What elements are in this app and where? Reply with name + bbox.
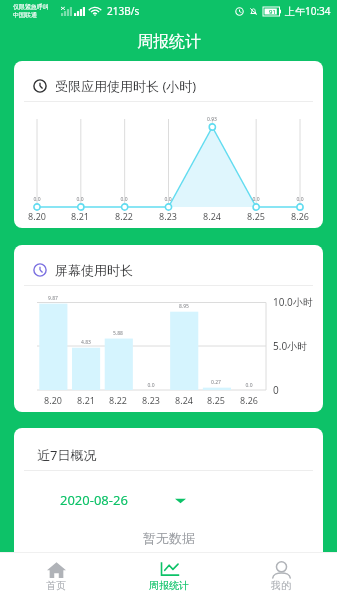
staticText: 仅限紧急呼叫 (13, 3, 49, 11)
staticText: 中国联通 (13, 11, 37, 19)
staticText: 8.21 (77, 394, 95, 406)
button[interactable]: 周报统计 (113, 553, 225, 600)
staticText: 近7日概况 (37, 446, 97, 464)
staticText: 我的 (271, 579, 291, 592)
staticText: 8.24 (203, 210, 221, 222)
button[interactable]: 2020-08-26 (60, 486, 186, 514)
button[interactable]: 首页 (0, 553, 112, 600)
staticText: 8.20 (28, 210, 46, 222)
staticText: 9.87 (48, 295, 58, 302)
button[interactable]: 我的 (225, 553, 337, 600)
staticText: 8.95 (179, 303, 189, 310)
staticText: 5.0小时 (273, 339, 308, 353)
staticText: 0.0 (120, 196, 128, 203)
staticText: 8.22 (109, 394, 127, 406)
staticText: 首页 (46, 579, 66, 592)
staticText: 0.0 (296, 196, 304, 203)
staticText: 0.0 (245, 382, 253, 389)
staticText: 213B/s (107, 4, 140, 18)
staticText: 暂无数据 (143, 530, 195, 546)
staticText: 受限应用使用时长 (小时) (55, 77, 197, 95)
staticText: 8.24 (175, 394, 193, 406)
staticText: 5.88 (113, 330, 123, 337)
staticText: 91 (269, 8, 276, 16)
staticText: 8.23 (159, 210, 177, 222)
staticText: 4.83 (81, 339, 91, 346)
staticText: 8.26 (291, 210, 309, 222)
staticText: 周报统计 (137, 32, 201, 52)
staticText: 8.25 (207, 394, 225, 406)
staticText: 0.0 (252, 196, 260, 203)
staticText: 0.93 (207, 116, 217, 123)
staticText: 0.0 (33, 196, 41, 203)
staticText: 8.21 (71, 210, 89, 222)
staticText: 8.20 (44, 394, 62, 406)
staticText: 8.23 (142, 394, 160, 406)
staticText: 0 (273, 383, 279, 397)
staticText: 0.0 (76, 196, 84, 203)
staticText: 上午10:34 (285, 4, 331, 18)
staticText: 2020-08-26 (60, 491, 128, 509)
staticText: 10.0小时 (273, 295, 313, 309)
staticText: 周报统计 (149, 579, 189, 592)
staticText: 8.26 (240, 394, 258, 406)
staticText: 8.25 (247, 210, 265, 222)
staticText: 0.27 (211, 379, 221, 386)
staticText: 屏幕使用时长 (55, 262, 133, 278)
staticText: 0.0 (147, 382, 155, 389)
staticText: 0.0 (164, 196, 172, 203)
staticText: 8.22 (115, 210, 133, 222)
